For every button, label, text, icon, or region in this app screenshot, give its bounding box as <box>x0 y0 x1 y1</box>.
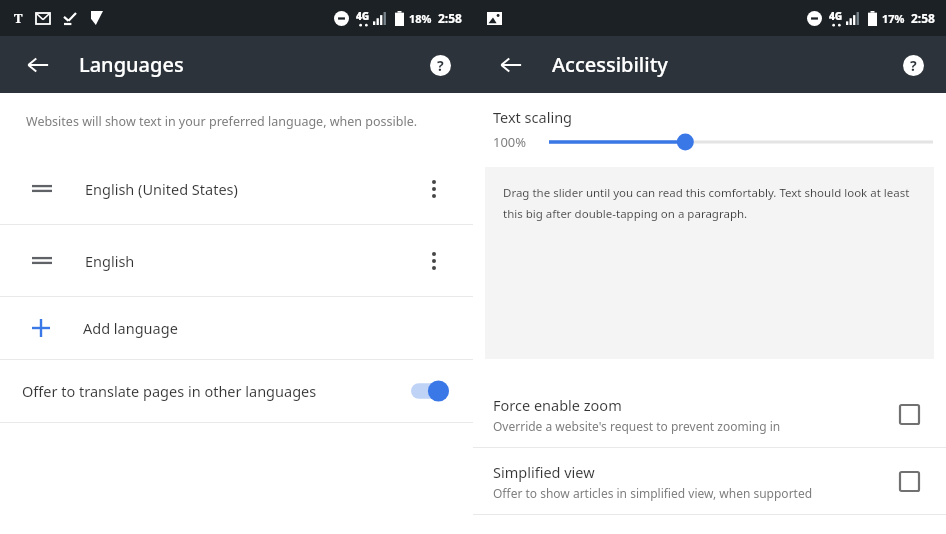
staticText: 100% <box>493 133 527 151</box>
button[interactable]: More options <box>419 246 449 276</box>
staticText: Accessibility <box>552 51 668 78</box>
staticText: Websites will show text in your preferre… <box>26 113 418 130</box>
staticText: Simplified view <box>493 462 595 482</box>
staticText: Override a website's request to prevent … <box>493 418 781 434</box>
button[interactable]: Simplified view <box>892 464 926 498</box>
staticText: 17% <box>882 11 905 26</box>
staticText: Drag the slider until you can read this … <box>503 185 920 222</box>
staticText: 4G <box>356 9 370 23</box>
button[interactable]: Back <box>21 48 55 82</box>
staticText: T <box>14 9 23 27</box>
button[interactable]: More options <box>419 174 449 204</box>
button[interactable]: Force enable zoom <box>892 397 926 431</box>
button[interactable]: Back <box>494 48 528 82</box>
staticText: Offer to show articles in simplified vie… <box>493 485 813 501</box>
button[interactable]: Help <box>896 48 930 82</box>
button[interactable]: Help <box>423 48 457 82</box>
button[interactable]: English (United States) <box>0 153 473 224</box>
button[interactable]: Text scaling slider <box>549 130 933 154</box>
button[interactable]: Force enable zoom <box>473 381 946 447</box>
staticText: Add language <box>83 318 178 338</box>
staticText: Offer to translate pages in other langua… <box>22 381 411 401</box>
staticText: English <box>85 251 135 271</box>
staticText: Languages <box>79 51 184 78</box>
staticText: 2:58 <box>911 10 935 26</box>
staticText: 4G <box>829 9 843 23</box>
button[interactable]: Offer to translate pages in other langua… <box>0 360 473 422</box>
button[interactable]: Add language <box>0 297 473 359</box>
button[interactable]: Simplified view <box>473 448 946 514</box>
button[interactable]: English <box>0 225 473 296</box>
staticText: Force enable zoom <box>493 395 622 415</box>
staticText: English (United States) <box>85 179 238 199</box>
staticText: ? <box>910 56 917 75</box>
staticText: 18% <box>409 11 432 26</box>
staticText: 2:58 <box>438 10 462 26</box>
staticText: Text scaling <box>493 107 573 127</box>
staticText: ? <box>437 56 444 75</box>
